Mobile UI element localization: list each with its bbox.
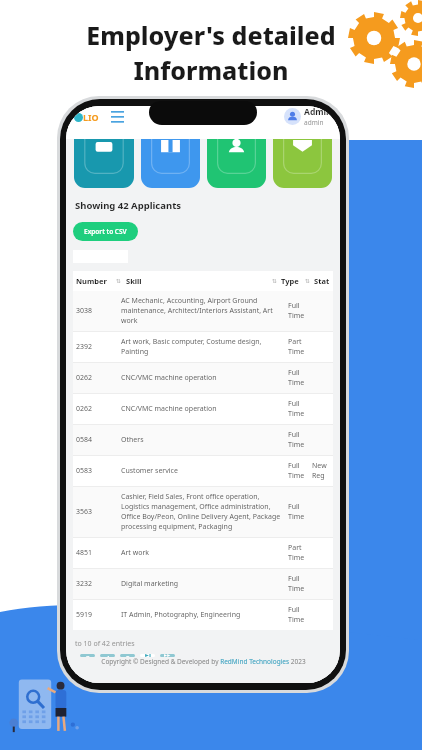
button[interactable]: 2392 <box>73 332 333 362</box>
button[interactable]: Menu <box>109 109 125 125</box>
staticText: 3 <box>86 654 90 657</box>
staticText: Information <box>133 53 289 87</box>
button[interactable]: 0262 <box>73 394 333 424</box>
staticText: LIO <box>83 111 99 123</box>
staticText: Full Time <box>288 430 308 450</box>
staticText: Others <box>121 435 284 445</box>
staticText: 4851 <box>76 548 121 558</box>
staticText: Employer's detailed <box>86 18 336 52</box>
staticText: Stat <box>314 276 330 286</box>
staticText: Type <box>281 276 305 286</box>
button[interactable]: Admin <box>284 106 332 127</box>
button[interactable]: Stat card <box>74 139 134 188</box>
staticText: 5 <box>126 654 130 657</box>
staticText: 0583 <box>76 466 121 476</box>
button[interactable]: 4 <box>100 654 115 657</box>
staticText: Part Time <box>288 543 308 563</box>
button[interactable]: 4851 <box>73 538 333 568</box>
button[interactable]: 3563 <box>73 487 333 537</box>
staticText: Skill <box>126 276 272 286</box>
staticText: admin <box>304 118 324 127</box>
staticText: IT Admin, Photography, Engineering <box>121 610 284 620</box>
staticText: Full Time <box>288 605 308 625</box>
staticText: 3563 <box>76 507 121 517</box>
staticText: 4 <box>106 654 110 657</box>
button[interactable]: 5919 <box>73 600 333 630</box>
button[interactable]: 0583 <box>73 456 333 486</box>
button[interactable]: 5 <box>120 654 135 657</box>
staticText: Full Time <box>288 399 308 419</box>
staticText: Number <box>76 276 116 286</box>
staticText: Copyright © Designed & Developed by RedM… <box>101 657 306 666</box>
staticText: CNC/VMC machine operation <box>121 373 284 383</box>
staticText: ⇅ <box>305 278 310 284</box>
staticText: Digital marketing <box>121 579 284 589</box>
staticText: 5919 <box>76 610 121 620</box>
button[interactable]: Stat card <box>141 139 200 188</box>
staticText: AC Mechanic, Accounting, Airport Ground … <box>121 296 284 326</box>
staticText: Full Time <box>288 502 308 522</box>
staticText: Export to CSV <box>84 227 127 236</box>
staticText: 3038 <box>76 306 121 316</box>
staticText: Full Time <box>288 301 308 321</box>
button[interactable]: Export to CSV <box>73 222 138 241</box>
staticText: Full Time <box>288 461 308 481</box>
staticText: CNC/VMC machine operation <box>121 404 284 414</box>
button[interactable]: 0584 <box>73 425 333 455</box>
staticText: Part Time <box>288 337 308 357</box>
button[interactable]: 3232 <box>73 569 333 599</box>
staticText: 0262 <box>76 373 121 383</box>
staticText: 2392 <box>76 342 121 352</box>
staticText: New Reg <box>312 461 330 481</box>
staticText: 0262 <box>76 404 121 414</box>
staticText: 3232 <box>76 579 121 589</box>
staticText: Admin <box>304 106 332 118</box>
button[interactable]: 3 <box>80 654 95 657</box>
button[interactable]: Last page <box>160 654 175 657</box>
staticText: Customer service <box>121 466 284 476</box>
staticText: Art work, Basic computer, Costume design… <box>121 337 284 357</box>
staticText: to 10 of 42 entries <box>75 639 135 649</box>
staticText: 0584 <box>76 435 121 445</box>
staticText: Art work <box>121 548 284 558</box>
staticText: ⇅ <box>272 278 277 284</box>
button[interactable]: 0262 <box>73 363 333 393</box>
staticText: Full Time <box>288 574 308 594</box>
button[interactable]: 3038 <box>73 291 333 331</box>
button[interactable]: Next page <box>140 654 155 657</box>
staticText: Showing 42 Applicants <box>75 199 182 212</box>
button[interactable]: Stat card <box>273 139 332 188</box>
staticText: Full Time <box>288 368 308 388</box>
staticText: ⇅ <box>116 278 121 284</box>
staticText: Cashier, Field Sales, Front office opera… <box>121 492 284 532</box>
button[interactable]: Stat card <box>207 139 266 188</box>
